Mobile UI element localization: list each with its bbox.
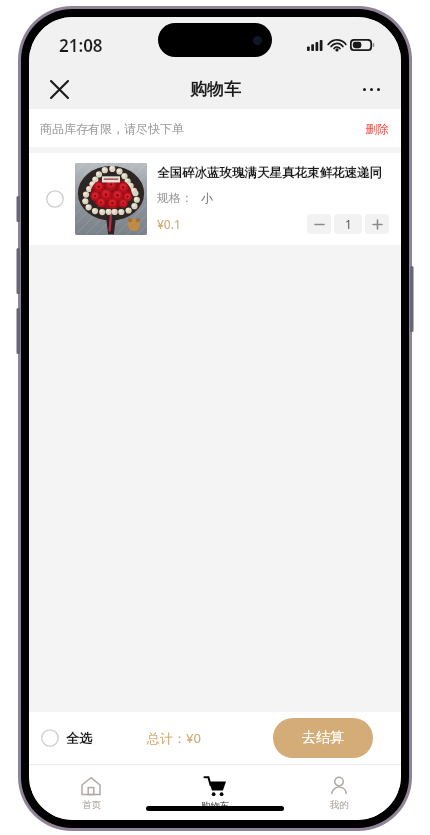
- staticText: 21:08: [59, 34, 103, 57]
- staticText: 全国碎冰蓝玫瑰满天星真花束鲜花速递同城: [157, 165, 389, 181]
- button[interactable]: 购物车: [153, 764, 277, 820]
- button[interactable]: Increase quantity: [365, 214, 389, 234]
- button[interactable]: 删除: [353, 115, 401, 142]
- button[interactable]: 我的: [277, 764, 401, 820]
- staticText: 购物车: [190, 79, 241, 100]
- staticText: 购物车: [201, 800, 230, 812]
- staticText: 1: [345, 216, 352, 232]
- button[interactable]: Decrease quantity: [307, 214, 331, 234]
- button[interactable]: 去结算: [273, 718, 373, 758]
- button[interactable]: Close: [39, 69, 79, 109]
- staticText: 我的: [330, 799, 349, 811]
- staticText: 商品库存有限，请尽快下单: [40, 121, 184, 136]
- staticText: ¥0.1: [157, 216, 181, 232]
- staticText: 总计：¥0: [147, 729, 201, 747]
- staticText: 小: [201, 190, 213, 205]
- button[interactable]: More options: [351, 69, 391, 109]
- button[interactable]: Select item: [39, 183, 71, 215]
- staticText: 去结算: [302, 729, 344, 747]
- staticText: 删除: [365, 121, 389, 136]
- button[interactable]: 首页: [29, 764, 153, 820]
- button[interactable]: 全选: [41, 729, 92, 747]
- staticText: 首页: [82, 799, 101, 811]
- button[interactable]: Select item: [29, 153, 401, 245]
- staticText: 规格：: [157, 190, 193, 205]
- staticText: 全选: [66, 730, 92, 746]
